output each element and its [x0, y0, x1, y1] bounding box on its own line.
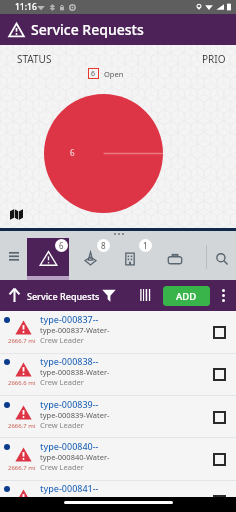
button[interactable]: ADD — [163, 286, 210, 306]
staticText: Crew Leader — [40, 462, 84, 472]
button[interactable]: Search — [208, 238, 236, 276]
staticText: 1 — [143, 240, 148, 251]
staticText: type-000841-Water- — [40, 494, 110, 504]
staticText: Service Requests — [27, 290, 100, 302]
staticText: 11:16 — [15, 1, 37, 13]
staticText: 2666.6 mi — [8, 379, 36, 387]
button[interactable]: Map — [10, 209, 23, 220]
staticText: 6 — [91, 69, 96, 79]
button[interactable]: Menu — [1, 237, 26, 275]
staticText: type-000840-Water- — [40, 452, 110, 462]
button[interactable]: More options — [217, 288, 229, 303]
button[interactable]: Outages tab — [69, 238, 109, 276]
button[interactable]: Assets tab — [155, 238, 195, 276]
staticText: Crew Leader — [40, 335, 84, 345]
staticText: STATUS — [17, 52, 52, 66]
button[interactable]: Up — [9, 288, 20, 302]
staticText: type-000839-- — [40, 398, 99, 410]
button[interactable]: Facilities tab — [111, 238, 151, 276]
staticText: 2666.7 mi — [8, 337, 36, 345]
button[interactable]: 2666.7 mi — [0, 438, 236, 480]
staticText: type-000839-Water- — [40, 410, 110, 420]
button[interactable]: Filter — [102, 288, 116, 302]
staticText: Open — [104, 69, 124, 79]
staticText: 2666.7 mi — [8, 464, 36, 472]
staticText: 6 — [70, 147, 75, 158]
staticText: 2666.7 mi — [8, 422, 36, 430]
staticText: PRIO — [202, 52, 226, 66]
button[interactable]: Scan barcode — [140, 289, 152, 301]
button[interactable]: 2666.7 mi — [0, 396, 236, 438]
staticText: type-000840-- — [40, 440, 99, 452]
staticText: type-000838-- — [40, 355, 99, 367]
staticText: 6 — [59, 240, 64, 251]
staticText: type-000841-- — [40, 482, 99, 494]
button[interactable]: 2666.7 mi — [0, 480, 236, 512]
button[interactable]: Service Requests tab — [27, 238, 69, 276]
staticText: Service Requests — [31, 20, 144, 39]
button[interactable]: 2666.7 mi — [0, 311, 236, 353]
staticText: Crew Leader — [40, 377, 84, 387]
staticText: type-000837-- — [40, 313, 99, 325]
staticText: 8 — [101, 240, 106, 251]
staticText: Crew Leader — [40, 420, 84, 430]
button[interactable]: 2666.6 mi — [0, 353, 236, 395]
staticText: type-000837-Water- — [40, 325, 110, 335]
staticText: type-000838-Water- — [40, 367, 110, 377]
staticText: ADD — [176, 290, 197, 303]
